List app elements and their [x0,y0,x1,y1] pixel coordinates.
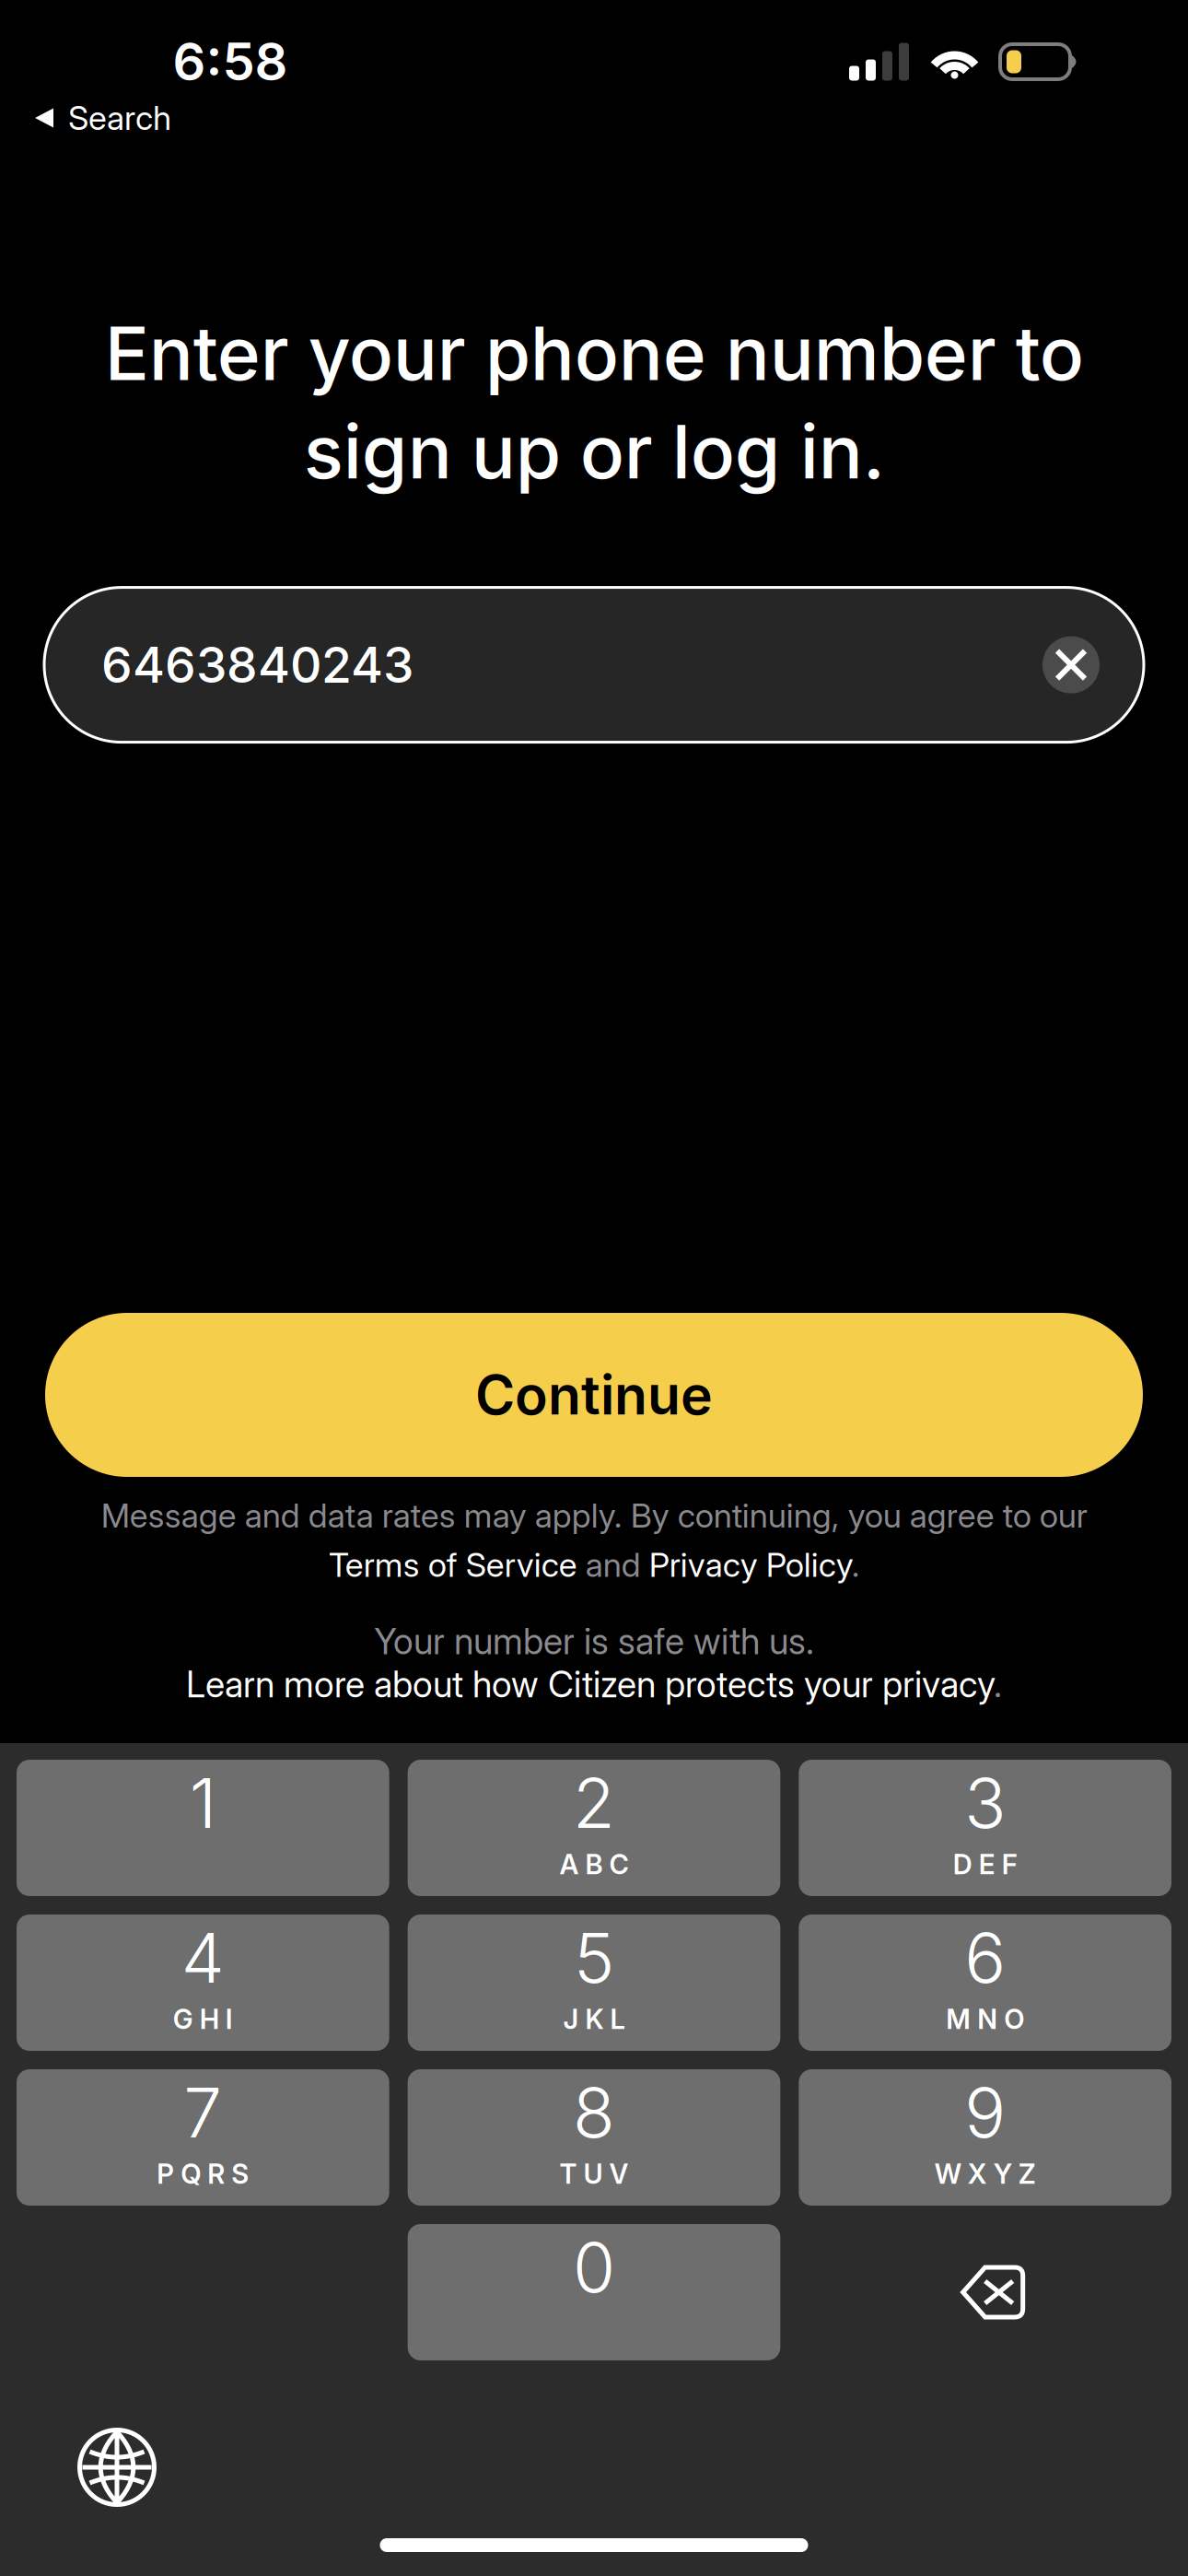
staticText: D E F [953,1848,1017,1881]
button[interactable]: Learn more about how Citizen protects yo… [186,1663,1002,1706]
button[interactable]: 8 [408,2069,780,2206]
button[interactable]: Next keyboard [73,2423,161,2512]
button[interactable]: Delete [961,2265,1026,2320]
button[interactable]: 5 [408,1914,780,2051]
staticText: Message and data rates may apply. By con… [101,1495,1087,1585]
staticText: 8 [573,2071,615,2154]
staticText: 6 [964,1916,1006,1999]
staticText: G H I [173,2003,233,2036]
staticText: W X Y Z [934,2158,1036,2190]
staticText: 6463840243 [101,635,413,694]
staticText: A B C [559,1848,629,1881]
staticText: 9 [964,2071,1006,2154]
button[interactable]: 3 [799,1760,1171,1896]
button[interactable]: Continue [45,1313,1143,1477]
staticText: T U V [559,2158,629,2190]
button[interactable]: 4 [17,1914,389,2051]
button[interactable]: Clear text [1031,625,1111,704]
button[interactable]: 9 [799,2069,1171,2206]
button[interactable]: 7 [17,2069,389,2206]
staticText: Continue [475,1362,713,1428]
staticText: 2 [573,1761,615,1844]
staticText: 0 [573,2226,615,2309]
staticText: 4 [181,1916,225,1999]
button[interactable]: 0 [408,2224,780,2360]
button[interactable]: 2 [408,1760,780,1896]
button[interactable]: 6 [799,1914,1171,2051]
staticText: J K L [563,2003,625,2036]
staticText: 7 [184,2071,222,2154]
button[interactable]: Search [0,96,193,140]
staticText: 6:58 [173,30,288,93]
staticText: Search [68,98,171,138]
staticText: Learn more about how Citizen protects yo… [186,1663,1002,1706]
staticText: 5 [574,1916,614,1999]
staticText: 1 [190,1761,216,1844]
staticText: 3 [964,1761,1006,1844]
staticText: P Q R S [157,2158,249,2190]
staticText: Your number is safe with us. [374,1620,814,1663]
staticText: M N O [946,2003,1024,2036]
button[interactable]: 1 [17,1760,389,1896]
staticText: Enter your phone number to sign up or lo… [105,309,1083,496]
